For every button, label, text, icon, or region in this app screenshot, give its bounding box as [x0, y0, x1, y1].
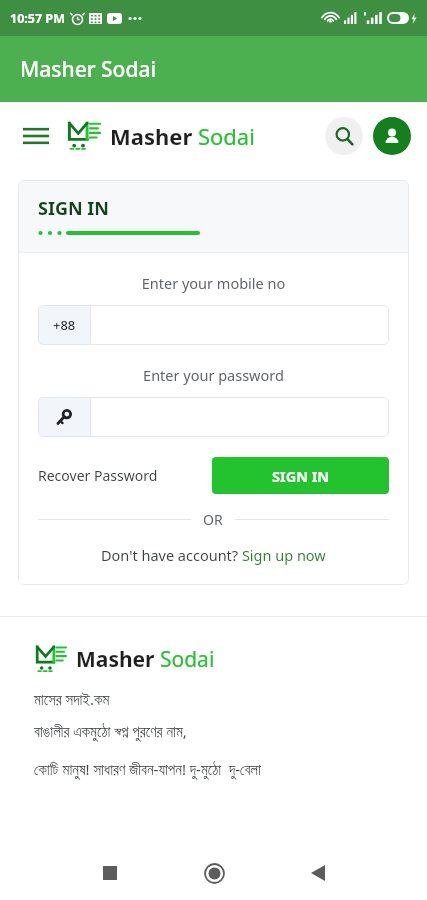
staticText: SIGN IN — [38, 196, 109, 221]
staticText: কোটি মানুষ! সাধারণ জীবন-যাপন! দু-মুঠো দু… — [34, 759, 261, 779]
staticText: 10:57 PM — [10, 10, 65, 27]
staticText: মাসের সদাই.কম — [34, 689, 110, 709]
staticText: Masher Sodai — [110, 121, 255, 151]
staticText: SIGN IN — [272, 466, 330, 486]
staticText: Enter your password — [38, 365, 389, 385]
button[interactable] — [38, 397, 389, 437]
staticText: বাঙালীর একমুঠো স্বপ্ন পুরণের নাম, — [34, 721, 187, 741]
staticText: Don't have account? Sign up now — [101, 545, 326, 565]
staticText: OR — [203, 510, 223, 529]
button[interactable]: +88 — [38, 305, 389, 345]
button[interactable]: Recents — [88, 851, 132, 895]
button[interactable]: Back — [296, 851, 340, 895]
button[interactable]: Account — [373, 117, 411, 155]
button[interactable]: Home — [192, 851, 236, 895]
button[interactable]: Open menu — [16, 116, 56, 156]
staticText: Masher Sodai — [76, 645, 215, 674]
staticText: Enter your mobile no — [38, 273, 389, 293]
staticText: Recover Password — [38, 466, 158, 485]
button[interactable]: SIGN IN — [212, 457, 389, 494]
button[interactable]: Search — [325, 117, 363, 155]
button[interactable]: Don't have account? Sign up now — [38, 545, 389, 565]
button[interactable]: Recover Password — [38, 460, 158, 491]
staticText: +88 — [53, 316, 76, 334]
staticText: Masher Sodai — [20, 55, 157, 84]
